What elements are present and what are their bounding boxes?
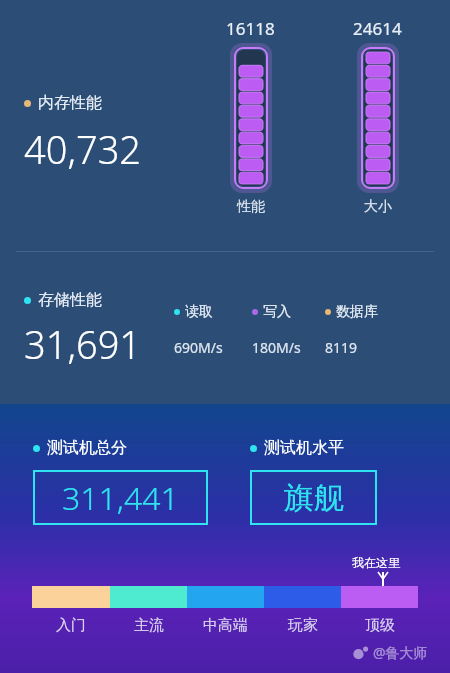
staticText: 690M/s xyxy=(174,338,252,357)
staticText: 24614 xyxy=(353,17,402,40)
staticText: 31,691 xyxy=(24,318,142,370)
staticText: 数据库 xyxy=(336,303,378,321)
staticText: 中高端 xyxy=(203,616,248,635)
staticText: 读取 xyxy=(185,303,213,321)
staticText: 40,732 xyxy=(24,123,142,175)
staticText: 8119 xyxy=(325,338,358,357)
staticText: 顶级 xyxy=(365,616,395,635)
staticText: 内存性能 xyxy=(38,93,102,113)
button[interactable]: Weibo 鲁大师 xyxy=(352,643,428,662)
staticText: 写入 xyxy=(263,303,291,321)
staticText: 180M/s xyxy=(252,338,325,357)
staticText: 测试机总分 xyxy=(47,438,127,458)
staticText: 入门 xyxy=(56,616,86,635)
button[interactable]: 旗舰 xyxy=(250,470,377,525)
staticText: 玩家 xyxy=(288,616,318,635)
staticText: 311,441 xyxy=(62,476,179,520)
staticText: 测试机水平 xyxy=(264,438,344,458)
staticText: 旗舰 xyxy=(284,479,344,517)
staticText: @鲁大师 xyxy=(373,643,428,662)
staticText: 存储性能 xyxy=(38,290,102,310)
staticText: 我在这里 xyxy=(352,555,400,570)
staticText: 大小 xyxy=(364,198,392,216)
staticText: 性能 xyxy=(237,198,265,216)
button[interactable]: 311,441 xyxy=(33,470,208,525)
staticText: 主流 xyxy=(134,616,164,635)
staticText: 16118 xyxy=(226,17,275,40)
